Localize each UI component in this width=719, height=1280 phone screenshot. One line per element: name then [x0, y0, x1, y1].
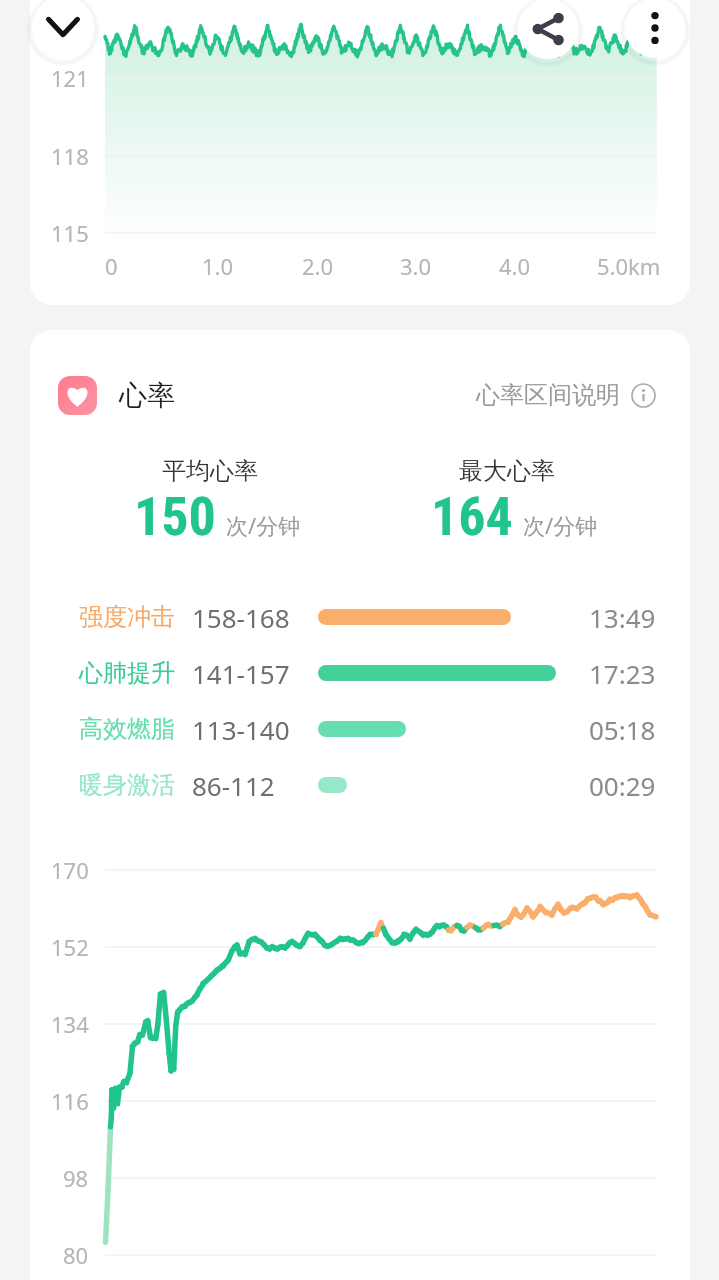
staticText: 2.0 — [302, 251, 334, 281]
staticText: 4.0 — [499, 251, 531, 281]
button[interactable]: 心肺提升 — [30, 645, 690, 701]
staticText: 5.0km — [597, 251, 661, 281]
staticText: 113-140 — [192, 712, 318, 747]
staticText: 最大心率 — [459, 456, 555, 486]
staticText: 05:18 — [589, 712, 656, 747]
staticText: 170 — [51, 855, 89, 885]
staticText: 平均心率 — [162, 456, 258, 486]
staticText: 158-168 — [192, 600, 318, 635]
staticText: 115 — [51, 218, 89, 248]
staticText: 152 — [51, 932, 89, 962]
button[interactable]: 心率区间说明 — [476, 377, 656, 413]
staticText: 121 — [51, 63, 89, 93]
staticText: 98 — [63, 1163, 89, 1193]
button[interactable]: More options — [619, 0, 691, 64]
staticText: 00:29 — [589, 768, 656, 803]
staticText: 17:23 — [589, 656, 656, 691]
button[interactable]: 高效燃脂 — [30, 701, 690, 757]
button[interactable]: Collapse — [26, 0, 100, 64]
staticText: 次/分钟 — [226, 510, 301, 540]
staticText: 心肺提升 — [79, 658, 192, 688]
staticText: 116 — [51, 1086, 89, 1116]
staticText: 134 — [51, 1009, 89, 1039]
staticText: 高效燃脂 — [79, 714, 192, 744]
staticText: 86-112 — [192, 768, 318, 803]
staticText: 141-157 — [192, 656, 318, 691]
staticText: 心率 — [119, 378, 175, 413]
staticText: 心率区间说明 — [476, 380, 620, 410]
staticText: 150 — [134, 485, 216, 548]
staticText: 0 — [105, 251, 118, 281]
button[interactable]: 暖身激活 — [30, 757, 690, 813]
staticText: 强度冲击 — [79, 602, 192, 632]
button[interactable]: Share — [512, 0, 584, 65]
button[interactable]: 强度冲击 — [30, 589, 690, 645]
staticText: 次/分钟 — [523, 510, 598, 540]
staticText: 80 — [63, 1240, 89, 1270]
staticText: 164 — [431, 485, 513, 548]
staticText: 暖身激活 — [79, 770, 192, 800]
staticText: 13:49 — [589, 600, 656, 635]
staticText: 3.0 — [400, 251, 432, 281]
staticText: 1.0 — [202, 251, 234, 281]
staticText: 118 — [51, 141, 89, 171]
